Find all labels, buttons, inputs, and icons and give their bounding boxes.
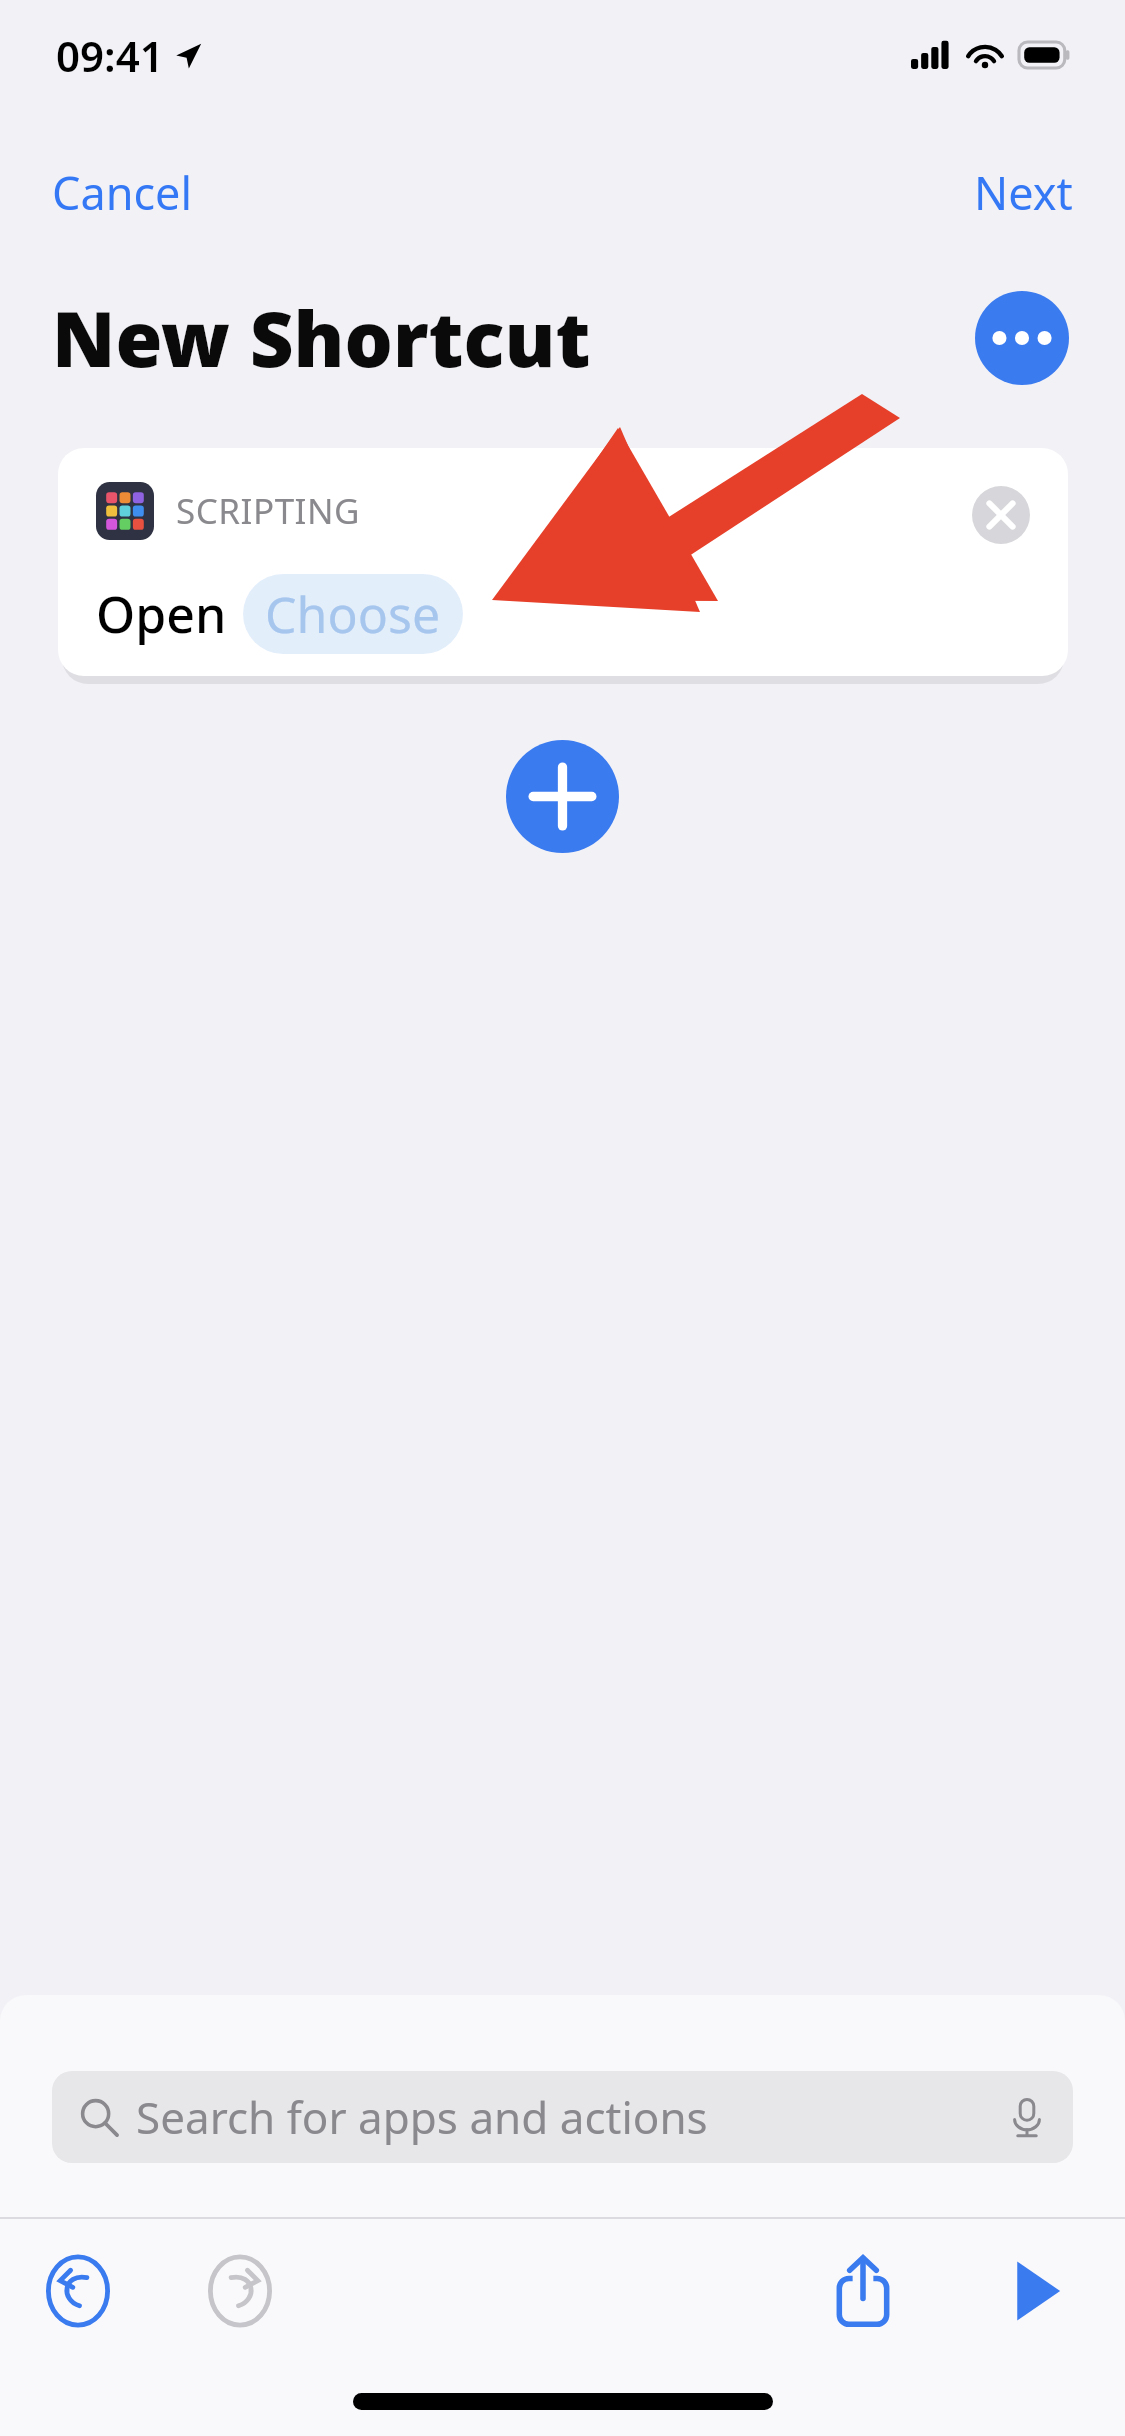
button[interactable]: Play — [987, 2243, 1083, 2339]
button[interactable]: Add action — [506, 740, 619, 853]
staticText: 09:41 — [56, 27, 164, 84]
button[interactable]: Undo — [30, 2243, 126, 2339]
staticText: Choose — [265, 580, 441, 648]
button[interactable]: Search for apps and actions — [52, 2071, 1073, 2163]
button[interactable]: Remove action — [972, 486, 1030, 544]
button[interactable]: More options — [975, 291, 1069, 385]
button[interactable]: Next — [952, 154, 1095, 231]
button[interactable]: Share — [815, 2243, 911, 2339]
staticText: Cancel — [52, 162, 193, 223]
staticText: Next — [974, 162, 1073, 223]
staticText: New Shortcut — [52, 286, 591, 390]
staticText: Search for apps and actions — [136, 2087, 708, 2147]
other: Voice search — [1007, 2097, 1047, 2137]
button[interactable]: Redo — [192, 2243, 288, 2339]
staticText: SCRIPTING — [176, 487, 361, 535]
button[interactable]: Cancel — [30, 154, 215, 231]
button[interactable]: Choose — [243, 574, 463, 654]
staticText: Open — [96, 580, 227, 648]
button[interactable]: SCRIPTING — [58, 448, 1068, 676]
